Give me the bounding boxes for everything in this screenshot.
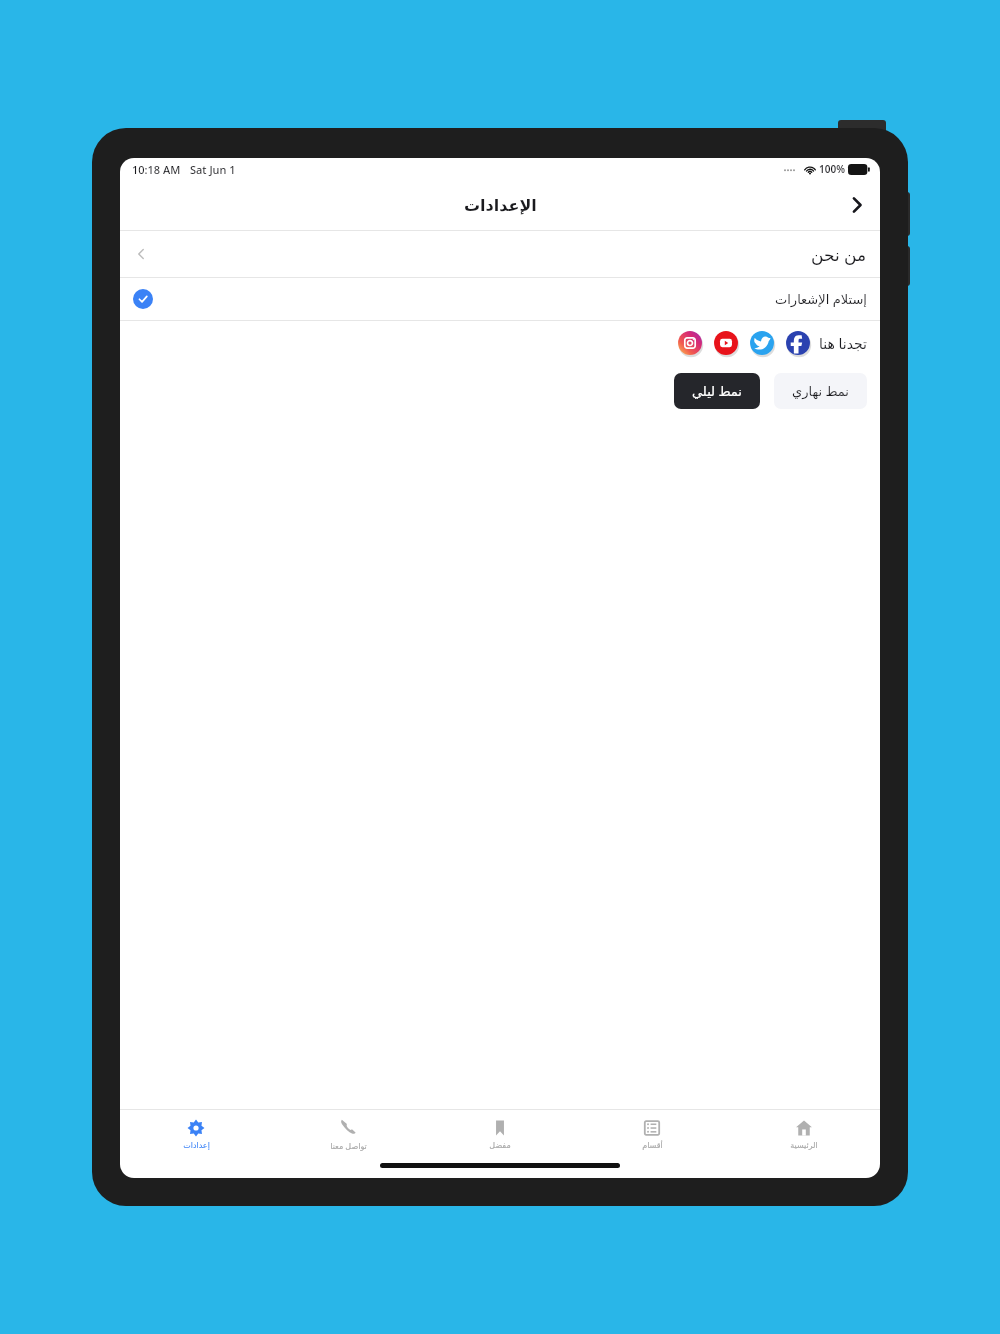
button[interactable]: نمط ليلي bbox=[674, 373, 760, 409]
staticText: الرئيسية bbox=[790, 1141, 818, 1150]
button[interactable]: الرئيسية bbox=[728, 1110, 880, 1158]
button[interactable]: نمط نهاري bbox=[774, 373, 867, 409]
button[interactable]: Instagram bbox=[677, 330, 703, 356]
staticText: تجدنا هنا bbox=[819, 334, 867, 353]
button[interactable]: YouTube bbox=[713, 330, 739, 356]
staticText: تواصل معنا bbox=[330, 1140, 367, 1151]
staticText: الإعدادات bbox=[464, 196, 537, 215]
staticText: 10:18 AM bbox=[132, 162, 181, 177]
staticText: أقسام bbox=[642, 1141, 663, 1150]
button[interactable]: إعدادات bbox=[120, 1110, 272, 1158]
staticText: مفضل bbox=[489, 1141, 511, 1150]
staticText: نمط ليلي bbox=[692, 382, 742, 400]
button[interactable]: مفضل bbox=[424, 1110, 576, 1158]
button[interactable]: إستلام الإشعارات bbox=[120, 278, 880, 320]
staticText: نمط نهاري bbox=[792, 382, 849, 400]
button[interactable]: Back bbox=[834, 180, 880, 230]
staticText: Sat Jun 1 bbox=[190, 162, 236, 177]
button[interactable]: Facebook bbox=[785, 330, 811, 356]
staticText: من نحن bbox=[811, 243, 867, 266]
button[interactable]: من نحن bbox=[120, 231, 880, 277]
staticText: إعدادات bbox=[183, 1141, 210, 1150]
staticText: إستلام الإشعارات bbox=[775, 290, 867, 308]
button[interactable]: Twitter bbox=[749, 330, 775, 356]
staticText: 100% bbox=[819, 162, 845, 176]
button[interactable]: تواصل معنا bbox=[272, 1110, 424, 1158]
button[interactable]: أقسام bbox=[576, 1110, 728, 1158]
